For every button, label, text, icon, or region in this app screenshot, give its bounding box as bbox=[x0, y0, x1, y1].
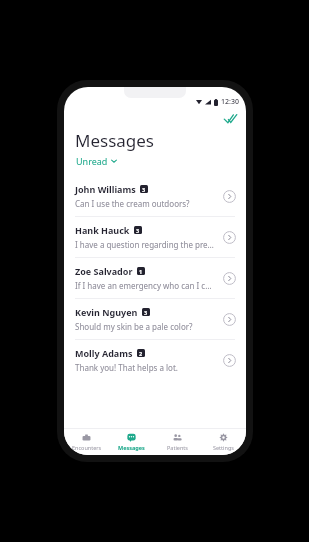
button[interactable]: Mark all read bbox=[222, 111, 238, 125]
staticText: If I have an emergency who can I contact… bbox=[75, 280, 215, 291]
staticText: Molly Adams bbox=[75, 347, 133, 359]
button[interactable]: Zoe Salvador bbox=[64, 258, 246, 298]
staticText: Should my skin be a pale color? bbox=[75, 321, 193, 332]
staticText: 12:30 bbox=[221, 97, 239, 107]
staticText: Thank you! That helps a lot. bbox=[75, 362, 178, 373]
button[interactable]: John Williams bbox=[64, 176, 246, 216]
button[interactable]: Open conversation bbox=[221, 229, 237, 245]
staticText: I have a question regarding the prescrip… bbox=[75, 239, 215, 250]
staticText: Patients bbox=[167, 444, 188, 451]
button[interactable]: Unread bbox=[75, 154, 118, 168]
staticText: Can I use the cream outdoors? bbox=[75, 198, 190, 209]
staticText: Kevin Nguyen bbox=[75, 306, 138, 318]
button[interactable]: Molly Adams bbox=[64, 340, 246, 380]
staticText: Hank Hauck bbox=[75, 224, 130, 236]
staticText: 1 bbox=[139, 268, 143, 275]
staticText: Messages bbox=[75, 129, 155, 152]
button[interactable]: Patients bbox=[154, 429, 200, 455]
staticText: 2 bbox=[139, 350, 143, 357]
staticText: John Williams bbox=[75, 183, 136, 195]
staticText: 3 bbox=[142, 186, 146, 193]
button[interactable]: Open conversation bbox=[221, 270, 237, 286]
staticText: Settings bbox=[213, 444, 234, 451]
button[interactable]: Messages bbox=[109, 429, 154, 455]
staticText: 3 bbox=[144, 309, 148, 316]
staticText: Encounters bbox=[72, 444, 102, 451]
staticText: Zoe Salvador bbox=[75, 265, 133, 277]
button[interactable]: Hank Hauck bbox=[64, 217, 246, 257]
staticText: 3 bbox=[136, 227, 140, 234]
button[interactable]: Open conversation bbox=[221, 188, 237, 204]
button[interactable]: Open conversation bbox=[221, 311, 237, 327]
staticText: Messages bbox=[118, 444, 145, 451]
staticText: Unread bbox=[76, 155, 108, 167]
button[interactable]: Settings bbox=[200, 429, 246, 455]
button[interactable]: Encounters bbox=[64, 429, 109, 455]
button[interactable]: Kevin Nguyen bbox=[64, 299, 246, 339]
button[interactable]: Open conversation bbox=[221, 352, 237, 368]
